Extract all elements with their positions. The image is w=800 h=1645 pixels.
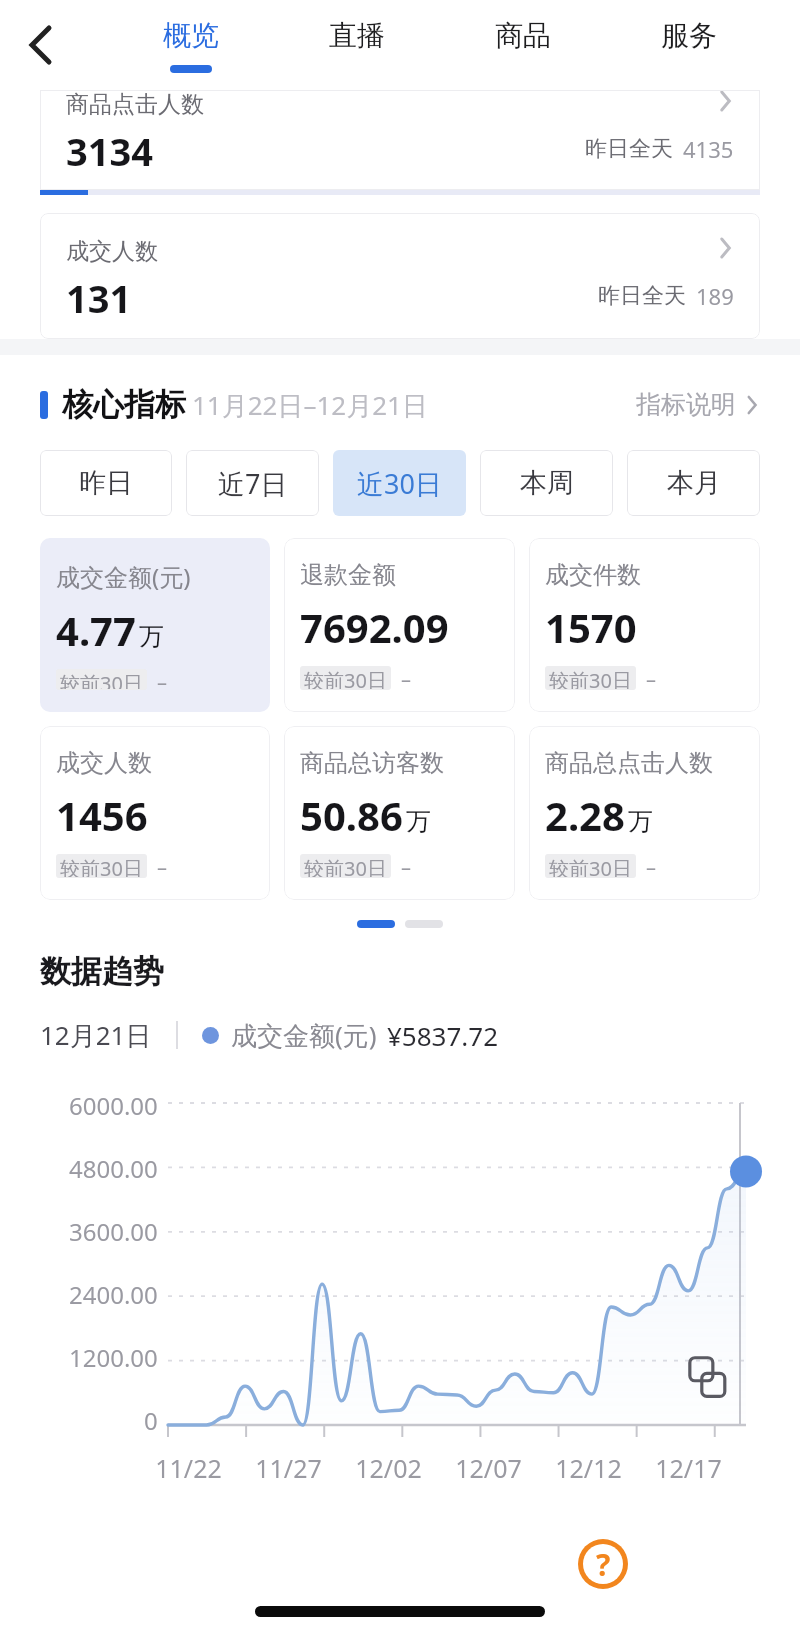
staticText: 商品总访客数: [300, 748, 444, 778]
staticText: 3134: [66, 125, 153, 177]
button[interactable]: 商品总访客数: [284, 726, 515, 900]
staticText: –: [157, 854, 167, 878]
staticText: –: [646, 854, 656, 878]
staticText: 1570: [545, 600, 637, 654]
staticText: 12/02: [355, 1451, 422, 1485]
button[interactable]: 成交人数: [40, 726, 270, 900]
staticText: ¥5837.72: [387, 1018, 499, 1053]
staticText: 12/17: [655, 1451, 722, 1485]
staticText: ?: [596, 1544, 611, 1584]
button[interactable]: 成交件数: [529, 538, 760, 712]
staticText: 较前30日: [304, 855, 387, 877]
staticText: 万: [628, 806, 653, 837]
staticText: 服务: [661, 18, 717, 53]
staticText: –: [646, 666, 656, 690]
staticText: 昨日全天: [598, 282, 686, 310]
staticText: 11/22: [155, 1451, 222, 1485]
staticText: 万: [406, 806, 431, 837]
staticText: 189: [696, 281, 734, 311]
staticText: 较前30日: [60, 855, 143, 877]
button[interactable]: 服务: [606, 0, 772, 90]
button[interactable]: 直播: [274, 0, 440, 90]
button[interactable]: 商品: [440, 0, 606, 90]
button[interactable]: 成交金额(元): [40, 538, 270, 712]
staticText: 较前30日: [549, 855, 632, 877]
staticText: 11月22日–12月21日: [192, 387, 428, 423]
button[interactable]: 本周: [480, 450, 613, 516]
staticText: 退款金额: [300, 560, 396, 590]
staticText: 核心指标: [62, 385, 186, 424]
staticText: 指标说明: [636, 389, 736, 420]
button[interactable]: 昨日: [40, 450, 172, 516]
staticText: 2400.00: [69, 1278, 158, 1311]
staticText: 131: [66, 272, 132, 324]
staticText: 数据趋势: [40, 952, 164, 991]
button[interactable]: 指标说明: [636, 389, 760, 420]
staticText: 1200.00: [69, 1341, 158, 1374]
staticText: 2.28: [545, 788, 625, 842]
staticText: 成交金额(元): [56, 560, 191, 593]
button[interactable]: 本月: [627, 450, 760, 516]
staticText: 11/27: [255, 1451, 322, 1485]
button[interactable]: 退款金额: [284, 538, 515, 712]
staticText: 本周: [520, 466, 574, 500]
staticText: 4.77: [56, 603, 136, 657]
button[interactable]: 近30日: [333, 450, 466, 516]
staticText: 0: [144, 1404, 158, 1437]
staticText: –: [401, 854, 411, 878]
staticText: 本月: [667, 466, 721, 500]
staticText: 商品总点击人数: [545, 748, 713, 778]
staticText: –: [157, 669, 167, 690]
button[interactable]: Help: [578, 1539, 628, 1589]
staticText: 万: [139, 621, 164, 652]
staticText: 成交人数: [66, 237, 158, 266]
staticText: 昨日: [79, 466, 133, 500]
staticText: 较前30日: [549, 667, 632, 689]
staticText: 50.86: [300, 788, 403, 842]
staticText: 1456: [56, 788, 148, 842]
button[interactable]: 商品点击人数: [40, 90, 760, 190]
staticText: 3600.00: [69, 1215, 158, 1248]
staticText: 12/12: [555, 1451, 622, 1485]
staticText: 成交件数: [545, 560, 641, 590]
staticText: 成交金额(元): [231, 1017, 377, 1053]
button[interactable]: 概览: [108, 0, 274, 90]
staticText: –: [401, 666, 411, 690]
staticText: 直播: [329, 18, 385, 53]
staticText: 商品点击人数: [66, 90, 204, 119]
staticText: 12月21日: [40, 1017, 152, 1053]
staticText: 近30日: [357, 465, 442, 502]
staticText: 概览: [163, 18, 219, 53]
staticText: 4135: [683, 134, 734, 164]
staticText: 较前30日: [304, 667, 387, 689]
staticText: 7692.09: [300, 600, 449, 654]
button[interactable]: Back: [10, 15, 70, 75]
staticText: 12/07: [455, 1451, 522, 1485]
button[interactable]: 成交人数: [40, 213, 760, 339]
staticText: 6000.00: [69, 1089, 158, 1122]
button[interactable]: 近7日: [186, 450, 319, 516]
staticText: 成交人数: [56, 748, 152, 778]
staticText: 商品: [495, 18, 551, 53]
staticText: 近7日: [218, 465, 288, 502]
button[interactable]: Rotate chart: [688, 1355, 734, 1401]
staticText: 昨日全天: [585, 135, 673, 163]
button[interactable]: 商品总点击人数: [529, 726, 760, 900]
staticText: 4800.00: [69, 1152, 158, 1185]
staticText: 较前30日: [60, 670, 143, 689]
